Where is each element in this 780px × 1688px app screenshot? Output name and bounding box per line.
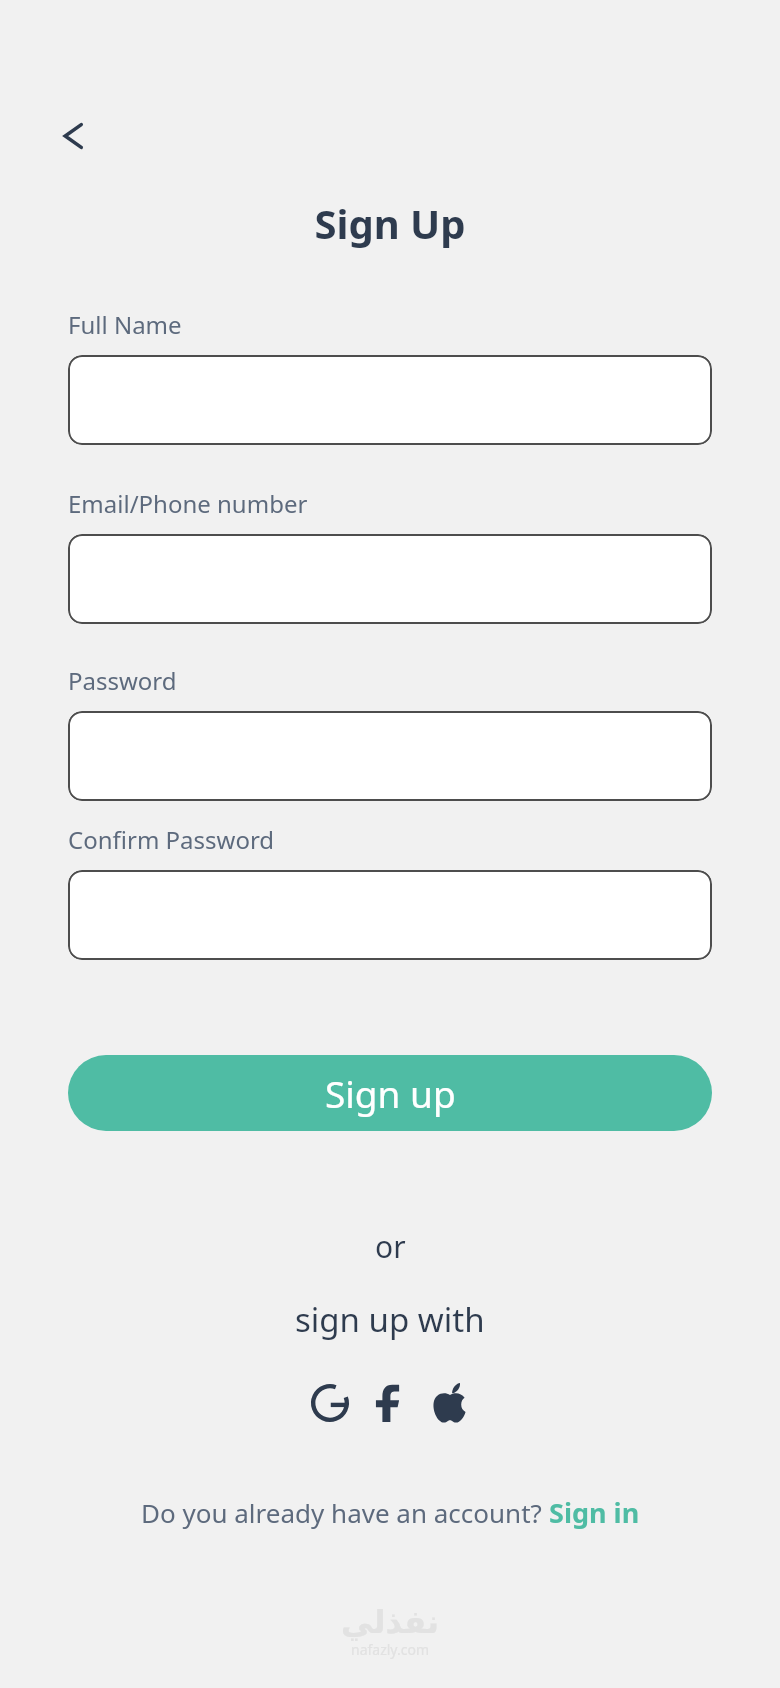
staticText: Confirm Password bbox=[68, 823, 275, 856]
button[interactable] bbox=[68, 534, 712, 624]
staticText: nafazly.com bbox=[351, 1640, 429, 1659]
staticText: sign up with bbox=[295, 1297, 485, 1342]
staticText: Full Name bbox=[68, 308, 182, 341]
button[interactable]: Back bbox=[46, 108, 102, 164]
button[interactable]: Sign up with Facebook bbox=[361, 1374, 419, 1432]
button[interactable] bbox=[68, 711, 712, 801]
button[interactable] bbox=[68, 355, 712, 445]
staticText: Sign up bbox=[325, 1068, 456, 1118]
staticText: نفذلي bbox=[341, 1603, 439, 1640]
staticText: or bbox=[375, 1226, 406, 1267]
button[interactable]: Sign up with Apple bbox=[421, 1374, 479, 1432]
button[interactable]: Sign up with Google bbox=[301, 1374, 359, 1432]
button[interactable]: Sign up bbox=[68, 1055, 712, 1131]
button[interactable]: Do you already have an account? bbox=[141, 1494, 640, 1531]
staticText: Sign Up bbox=[314, 196, 466, 250]
staticText: Password bbox=[68, 664, 177, 697]
staticText: Email/Phone number bbox=[68, 487, 308, 520]
staticText: Do you already have an account? bbox=[141, 1495, 549, 1530]
staticText: Sign in bbox=[549, 1494, 640, 1531]
button[interactable] bbox=[68, 870, 712, 960]
